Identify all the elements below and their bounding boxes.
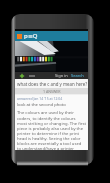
staticText: p≡Q [24,32,38,40]
staticText: Search [71,73,84,78]
staticText: what does the c and y mean here? [17,81,88,87]
staticText: answered Jan 14 '15 at 12:04 [17,96,63,101]
staticText: 1 ANSWER [43,89,61,94]
button[interactable]: Add [19,73,25,79]
button[interactable]: p≡Q [15,31,88,41]
staticText: look at the second photo [17,102,66,108]
staticText: The colours are used by their coders, to… [17,110,86,150]
button[interactable]: what does the c and y mean here? [15,79,88,88]
staticText: Sign in [55,73,68,78]
